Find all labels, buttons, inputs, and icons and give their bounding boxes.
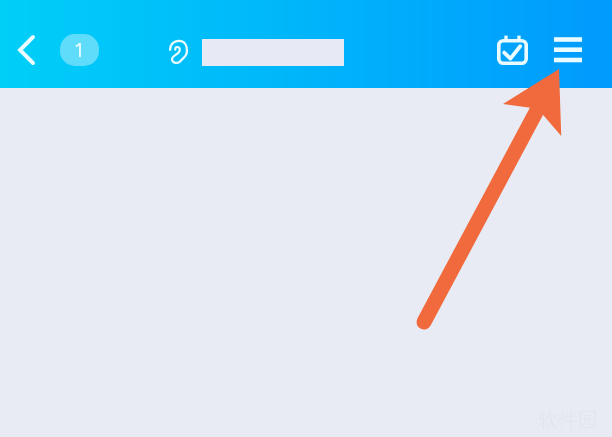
button[interactable]: Calendar	[491, 29, 533, 71]
button[interactable]: Back	[12, 32, 48, 68]
button[interactable]: 1	[60, 34, 99, 66]
staticText: 1	[74, 37, 85, 63]
button[interactable]: Menu	[548, 31, 588, 69]
button[interactable]: Listen	[165, 36, 195, 68]
